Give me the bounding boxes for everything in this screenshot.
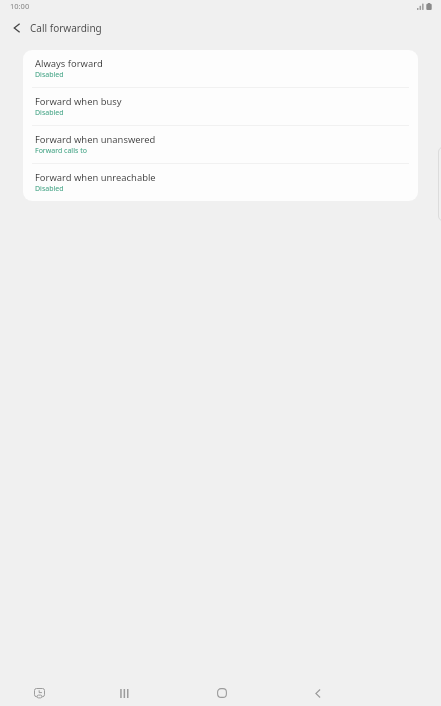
staticText: Always forward <box>35 57 103 70</box>
staticText: Forward when busy <box>35 95 122 108</box>
button[interactable]: Recent apps <box>109 677 139 706</box>
staticText: Disabled <box>35 108 64 118</box>
staticText: Forward when unanswered <box>35 133 156 146</box>
staticText: Disabled <box>35 70 64 80</box>
staticText: Forward calls to <box>35 146 87 156</box>
button[interactable]: Home <box>206 677 236 706</box>
staticText: Disabled <box>35 184 64 194</box>
button[interactable]: Always forward <box>23 50 418 88</box>
staticText: Forward when unreachable <box>35 171 156 184</box>
button[interactable]: Forward when busy <box>23 88 418 126</box>
staticText: Call forwarding <box>30 21 102 35</box>
button[interactable]: Forward when unreachable <box>23 164 418 201</box>
staticText: 10:00 <box>10 1 30 11</box>
button[interactable]: Forward when unanswered <box>23 126 418 164</box>
button[interactable]: Capture screenshot <box>24 677 54 706</box>
button[interactable]: Navigate up <box>2 13 32 43</box>
button[interactable]: Back <box>303 677 333 706</box>
